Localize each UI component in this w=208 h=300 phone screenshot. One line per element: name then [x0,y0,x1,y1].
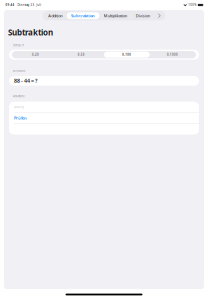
staticText: 0-50 [78,53,85,56]
button[interactable]: Multiplikation [99,12,131,19]
button[interactable]: Division [131,12,154,19]
button[interactable]: 0-100 [104,52,150,58]
staticText: Division [136,13,150,18]
staticText: Dienstag 23. Juli [14,3,41,7]
staticText: Multiplikation [104,13,127,18]
staticText: 09:44 [5,3,14,7]
staticText: 0-1000 [167,53,178,56]
staticText: AUFGABE [13,69,25,72]
staticText: BEREICH [13,44,24,47]
staticText: 0-100 [122,53,131,56]
staticText: Prüfen [14,115,27,121]
button[interactable]: 0-1000 [150,52,195,58]
staticText: 0-20 [32,53,39,56]
button[interactable]: Prüfen [9,113,199,123]
button[interactable]: 0-20 [13,52,58,58]
staticText: 100% [188,3,196,7]
button[interactable]: 0-50 [58,52,104,58]
staticText: Addition [48,13,62,18]
staticText: Subtraktion [71,13,95,18]
staticText: Subtraktion [8,27,53,38]
button[interactable]: Mehr [154,12,165,19]
staticText: 88 - 44 = ? [14,77,37,84]
staticText: Lösung [14,105,24,109]
button[interactable]: Addition [44,12,67,19]
button[interactable]: Subtraktion [67,12,99,19]
staticText: ANTWORT [13,95,25,98]
